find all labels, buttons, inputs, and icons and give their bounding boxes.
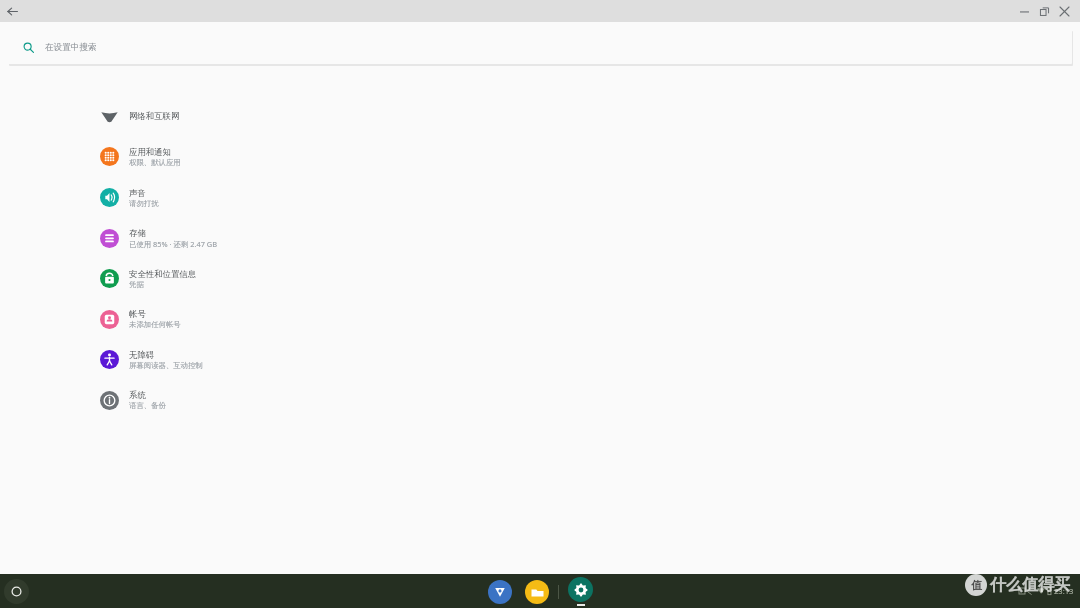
staticText: 帐号 <box>129 309 146 320</box>
staticText: 语言、备份 <box>129 401 166 410</box>
staticText: 系统 <box>129 390 146 401</box>
staticText: 网络和互联网 <box>129 111 180 122</box>
button[interactable]: 无障碍 <box>0 339 1080 380</box>
staticText: 已使用 85% · 还剩 2.47 GB <box>129 239 217 249</box>
staticText: 值 <box>971 578 982 592</box>
staticText: 23:13 <box>1054 586 1074 596</box>
staticText: 声音 <box>129 188 146 199</box>
staticText: 安全性和位置信息 <box>129 269 197 280</box>
staticText: 屏幕阅读器、互动控制 <box>129 361 203 370</box>
button[interactable]: Back <box>3 2 21 20</box>
staticText: 应用和通知 <box>129 147 171 158</box>
staticText: 请勿打扰 <box>129 199 159 208</box>
staticText: 什么值得买 <box>990 575 1070 595</box>
button[interactable]: 系统 <box>0 380 1080 420</box>
staticText: 未添加任何帐号 <box>129 320 181 329</box>
button[interactable]: 在设置中搜索 <box>8 30 1072 64</box>
button[interactable]: Close <box>1054 1 1074 21</box>
button[interactable]: Launcher <box>4 579 29 604</box>
staticText: 凭据 <box>129 280 144 289</box>
button[interactable]: 网络和互联网 <box>0 96 1080 136</box>
button[interactable]: 存储 <box>0 218 1080 258</box>
staticText: 在设置中搜索 <box>45 42 97 53</box>
staticText: 无障碍 <box>129 350 155 361</box>
button[interactable]: Play <box>488 580 512 604</box>
staticText: 存储 <box>129 228 146 239</box>
button[interactable]: 安全性和位置信息 <box>0 258 1080 299</box>
button[interactable]: 声音 <box>0 177 1080 218</box>
button[interactable]: Settings <box>568 577 593 602</box>
button[interactable]: 帐号 <box>0 299 1080 339</box>
button[interactable]: Minimize <box>1014 1 1034 21</box>
staticText: 权限、默认应用 <box>129 158 181 167</box>
button[interactable]: Files <box>525 580 549 604</box>
button[interactable]: Maximize <box>1034 1 1054 21</box>
button[interactable]: 应用和通知 <box>0 136 1080 177</box>
